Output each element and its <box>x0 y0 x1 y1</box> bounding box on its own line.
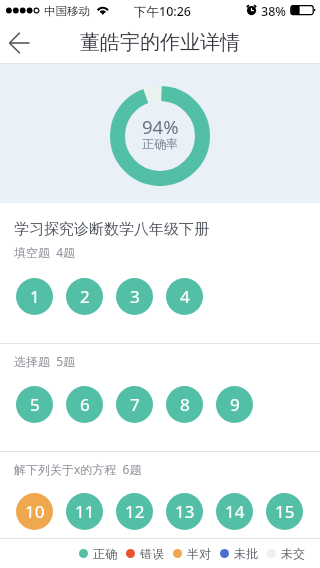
staticText: 3 <box>130 285 140 308</box>
staticText: 未交 <box>281 546 305 561</box>
button[interactable]: 6 <box>66 386 103 423</box>
button[interactable]: 5 <box>16 386 53 423</box>
button[interactable]: 13 <box>166 493 203 530</box>
staticText: 选择题 5题 <box>14 353 76 369</box>
staticText: 董皓宇的作业详情 <box>80 30 240 55</box>
staticText: 下午10:26 <box>134 3 192 20</box>
staticText: 94% <box>142 114 179 139</box>
staticText: 6 <box>80 393 90 416</box>
staticText: 填空题 4题 <box>14 244 76 260</box>
button[interactable]: 11 <box>66 493 103 530</box>
staticText: 5 <box>30 393 40 416</box>
button[interactable]: Back <box>0 22 42 63</box>
staticText: 2 <box>80 285 90 308</box>
button[interactable]: 10 <box>16 493 53 530</box>
staticText: 中国移动 <box>44 4 90 18</box>
staticText: 4 <box>180 285 190 308</box>
staticText: 8 <box>180 393 190 416</box>
staticText: 12 <box>125 500 145 523</box>
staticText: 38% <box>261 3 286 20</box>
staticText: 解下列关于x的方程 6题 <box>14 461 142 477</box>
staticText: 半对 <box>187 546 211 561</box>
button[interactable]: 15 <box>266 493 303 530</box>
button[interactable]: 1 <box>16 278 53 315</box>
staticText: 1 <box>30 285 40 308</box>
staticText: 15 <box>275 500 295 523</box>
staticText: 10 <box>25 500 45 523</box>
button[interactable]: 14 <box>216 493 253 530</box>
button[interactable]: 4 <box>166 278 203 315</box>
staticText: 11 <box>75 500 95 523</box>
button[interactable]: 2 <box>66 278 103 315</box>
button[interactable]: 12 <box>116 493 153 530</box>
staticText: 错误 <box>140 546 164 561</box>
button[interactable]: 8 <box>166 386 203 423</box>
staticText: 13 <box>175 500 195 523</box>
button[interactable]: 9 <box>216 386 253 423</box>
staticText: 7 <box>130 393 140 416</box>
staticText: 学习探究诊断数学八年级下册 <box>14 220 209 239</box>
staticText: 正确 <box>93 546 117 561</box>
button[interactable]: 3 <box>116 278 153 315</box>
staticText: 9 <box>230 393 240 416</box>
staticText: 正确率 <box>142 136 178 151</box>
staticText: 未批 <box>234 546 258 561</box>
button[interactable]: 7 <box>116 386 153 423</box>
staticText: 14 <box>225 500 245 523</box>
